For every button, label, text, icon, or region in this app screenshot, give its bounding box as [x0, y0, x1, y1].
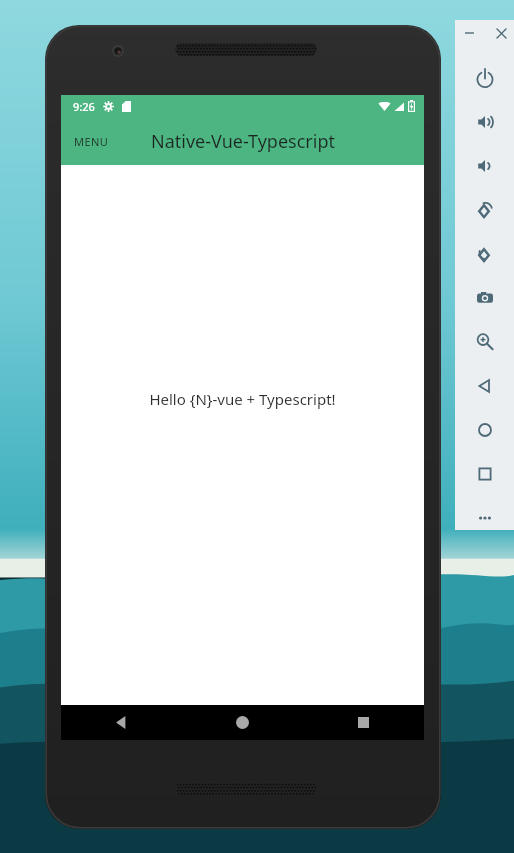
- button[interactable]: Recents: [303, 705, 424, 740]
- button[interactable]: Zoom: [455, 320, 514, 364]
- button[interactable]: Back: [61, 705, 182, 740]
- button[interactable]: Screenshot: [455, 276, 514, 320]
- staticText: 9:26: [73, 99, 95, 114]
- button[interactable]: Volume down: [455, 144, 514, 188]
- button[interactable]: Power: [455, 56, 514, 100]
- staticText: Native-Vue-Typescript: [151, 129, 335, 154]
- button[interactable]: Volume up: [455, 100, 514, 144]
- staticText: Hello {N}-vue + Typescript!: [149, 389, 336, 409]
- button[interactable]: Rotate right: [455, 232, 514, 276]
- button[interactable]: MENU: [67, 128, 116, 155]
- button[interactable]: More: [455, 496, 514, 540]
- button[interactable]: Close: [491, 23, 511, 43]
- button[interactable]: Overview: [455, 452, 514, 496]
- button[interactable]: Home: [182, 705, 303, 740]
- button[interactable]: Minimize: [459, 23, 479, 43]
- button[interactable]: Back: [455, 364, 514, 408]
- staticText: MENU: [74, 134, 109, 149]
- button[interactable]: Rotate left: [455, 188, 514, 232]
- button[interactable]: Home: [455, 408, 514, 452]
